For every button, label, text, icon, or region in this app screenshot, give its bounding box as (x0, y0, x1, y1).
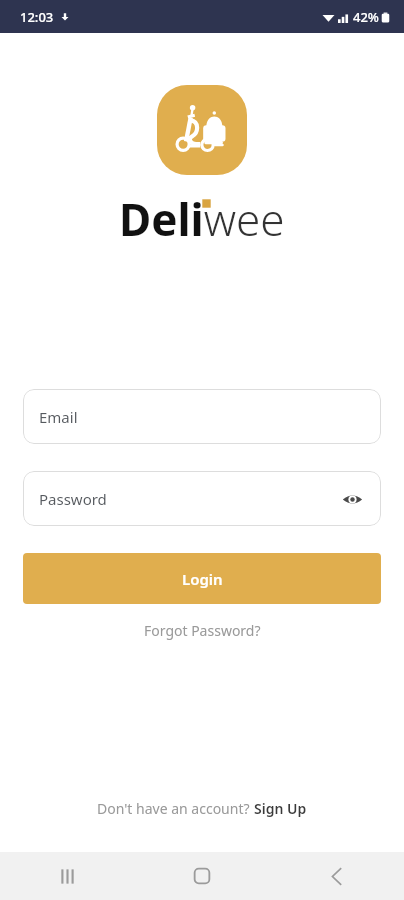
button[interactable]: Forgot Password? (134, 617, 271, 644)
staticText: Sign Up (254, 799, 307, 818)
button[interactable]: Recent apps (43, 852, 91, 900)
staticText: Email (39, 407, 78, 427)
staticText: Forgot Password? (144, 621, 261, 640)
button[interactable]: Show password (335, 482, 369, 516)
button[interactable]: Don't have an account? (89, 795, 315, 822)
staticText: Don't have an account? (97, 799, 254, 818)
staticText: Deliwee (119, 189, 285, 249)
button[interactable]: Email (23, 389, 381, 444)
staticText: Password (39, 489, 107, 509)
button[interactable]: Back (313, 852, 361, 900)
staticText: Login (182, 569, 223, 589)
button[interactable]: Password (23, 471, 381, 526)
staticText: 42% (353, 8, 379, 26)
staticText: 12:03 (20, 8, 54, 26)
button[interactable]: Home (178, 852, 226, 900)
button[interactable]: Login (23, 553, 381, 604)
